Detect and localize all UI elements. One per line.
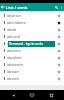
staticText: absolute	[7, 55, 55, 60]
button[interactable]: Favorite	[55, 33, 62, 40]
staticText: abstract	[7, 13, 55, 18]
button[interactable]: Search	[53, 4, 59, 10]
button[interactable]: Removed - tap to undo	[8, 41, 55, 47]
button[interactable]: Recent apps	[45, 90, 57, 100]
button[interactable]: Back	[7, 90, 19, 100]
button[interactable]: Favorite	[55, 61, 62, 68]
staticText: absorb	[7, 76, 55, 81]
button[interactable]: Favorite	[55, 40, 62, 47]
button[interactable]: absolute	[0, 54, 64, 61]
button[interactable]: abound	[0, 33, 64, 40]
staticText: abdomen	[7, 62, 55, 67]
button[interactable]: Favorite	[55, 54, 62, 61]
staticText: Removed - tap to undo	[9, 42, 44, 46]
button[interactable]: absorb	[0, 75, 64, 82]
button[interactable]: Navigate up	[0, 4, 6, 10]
button[interactable]: abdomen	[0, 61, 64, 68]
staticText: abundance	[7, 20, 55, 25]
button[interactable]: Favorite	[55, 75, 62, 82]
staticText: absence	[7, 48, 55, 53]
staticText: abrasive	[7, 41, 55, 46]
staticText: abide	[7, 27, 55, 32]
button[interactable]: Favorite	[55, 47, 62, 54]
staticText: Lists / words	[6, 5, 28, 10]
button[interactable]: Favorite	[55, 12, 62, 19]
button[interactable]: More options	[59, 5, 64, 10]
button[interactable]: Favorite	[55, 26, 62, 33]
button[interactable]: abstain	[0, 68, 64, 75]
button[interactable]: abrasive	[0, 40, 64, 47]
staticText: abound	[7, 34, 55, 39]
button[interactable]: abide	[0, 26, 64, 33]
button[interactable]: abundance	[0, 19, 64, 26]
button[interactable]: abstract	[0, 12, 64, 19]
button[interactable]: Favorite	[55, 19, 62, 26]
button[interactable]: Home	[26, 90, 38, 100]
button[interactable]: absence	[0, 47, 64, 54]
button[interactable]: Favorite	[55, 68, 62, 75]
staticText: abstain	[7, 69, 55, 74]
